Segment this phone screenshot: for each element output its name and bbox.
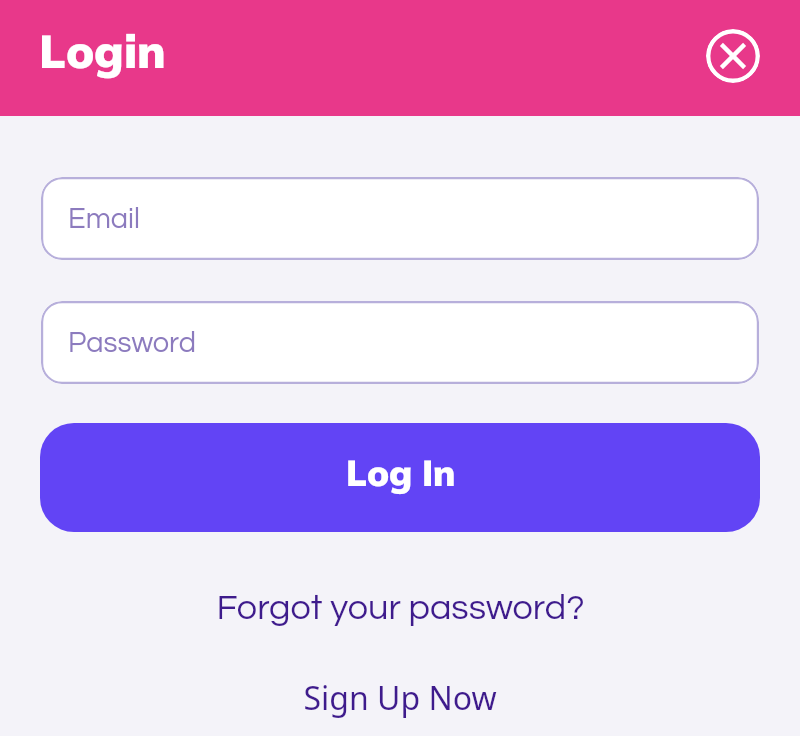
button[interactable]: Close xyxy=(706,29,760,83)
staticText: Login xyxy=(41,36,118,68)
staticText: Sign Up Now xyxy=(303,676,497,720)
staticText: Email xyxy=(68,204,140,234)
staticText: Forgot your password? xyxy=(216,589,585,626)
staticText: Password xyxy=(68,328,197,358)
button[interactable]: Sign Up Now xyxy=(0,675,800,721)
button[interactable]: Password xyxy=(41,301,759,384)
button[interactable]: Forgot your password? xyxy=(0,584,800,630)
button[interactable]: Email xyxy=(41,177,759,260)
button[interactable]: Log In xyxy=(40,423,760,532)
staticText: Log In xyxy=(368,465,433,490)
